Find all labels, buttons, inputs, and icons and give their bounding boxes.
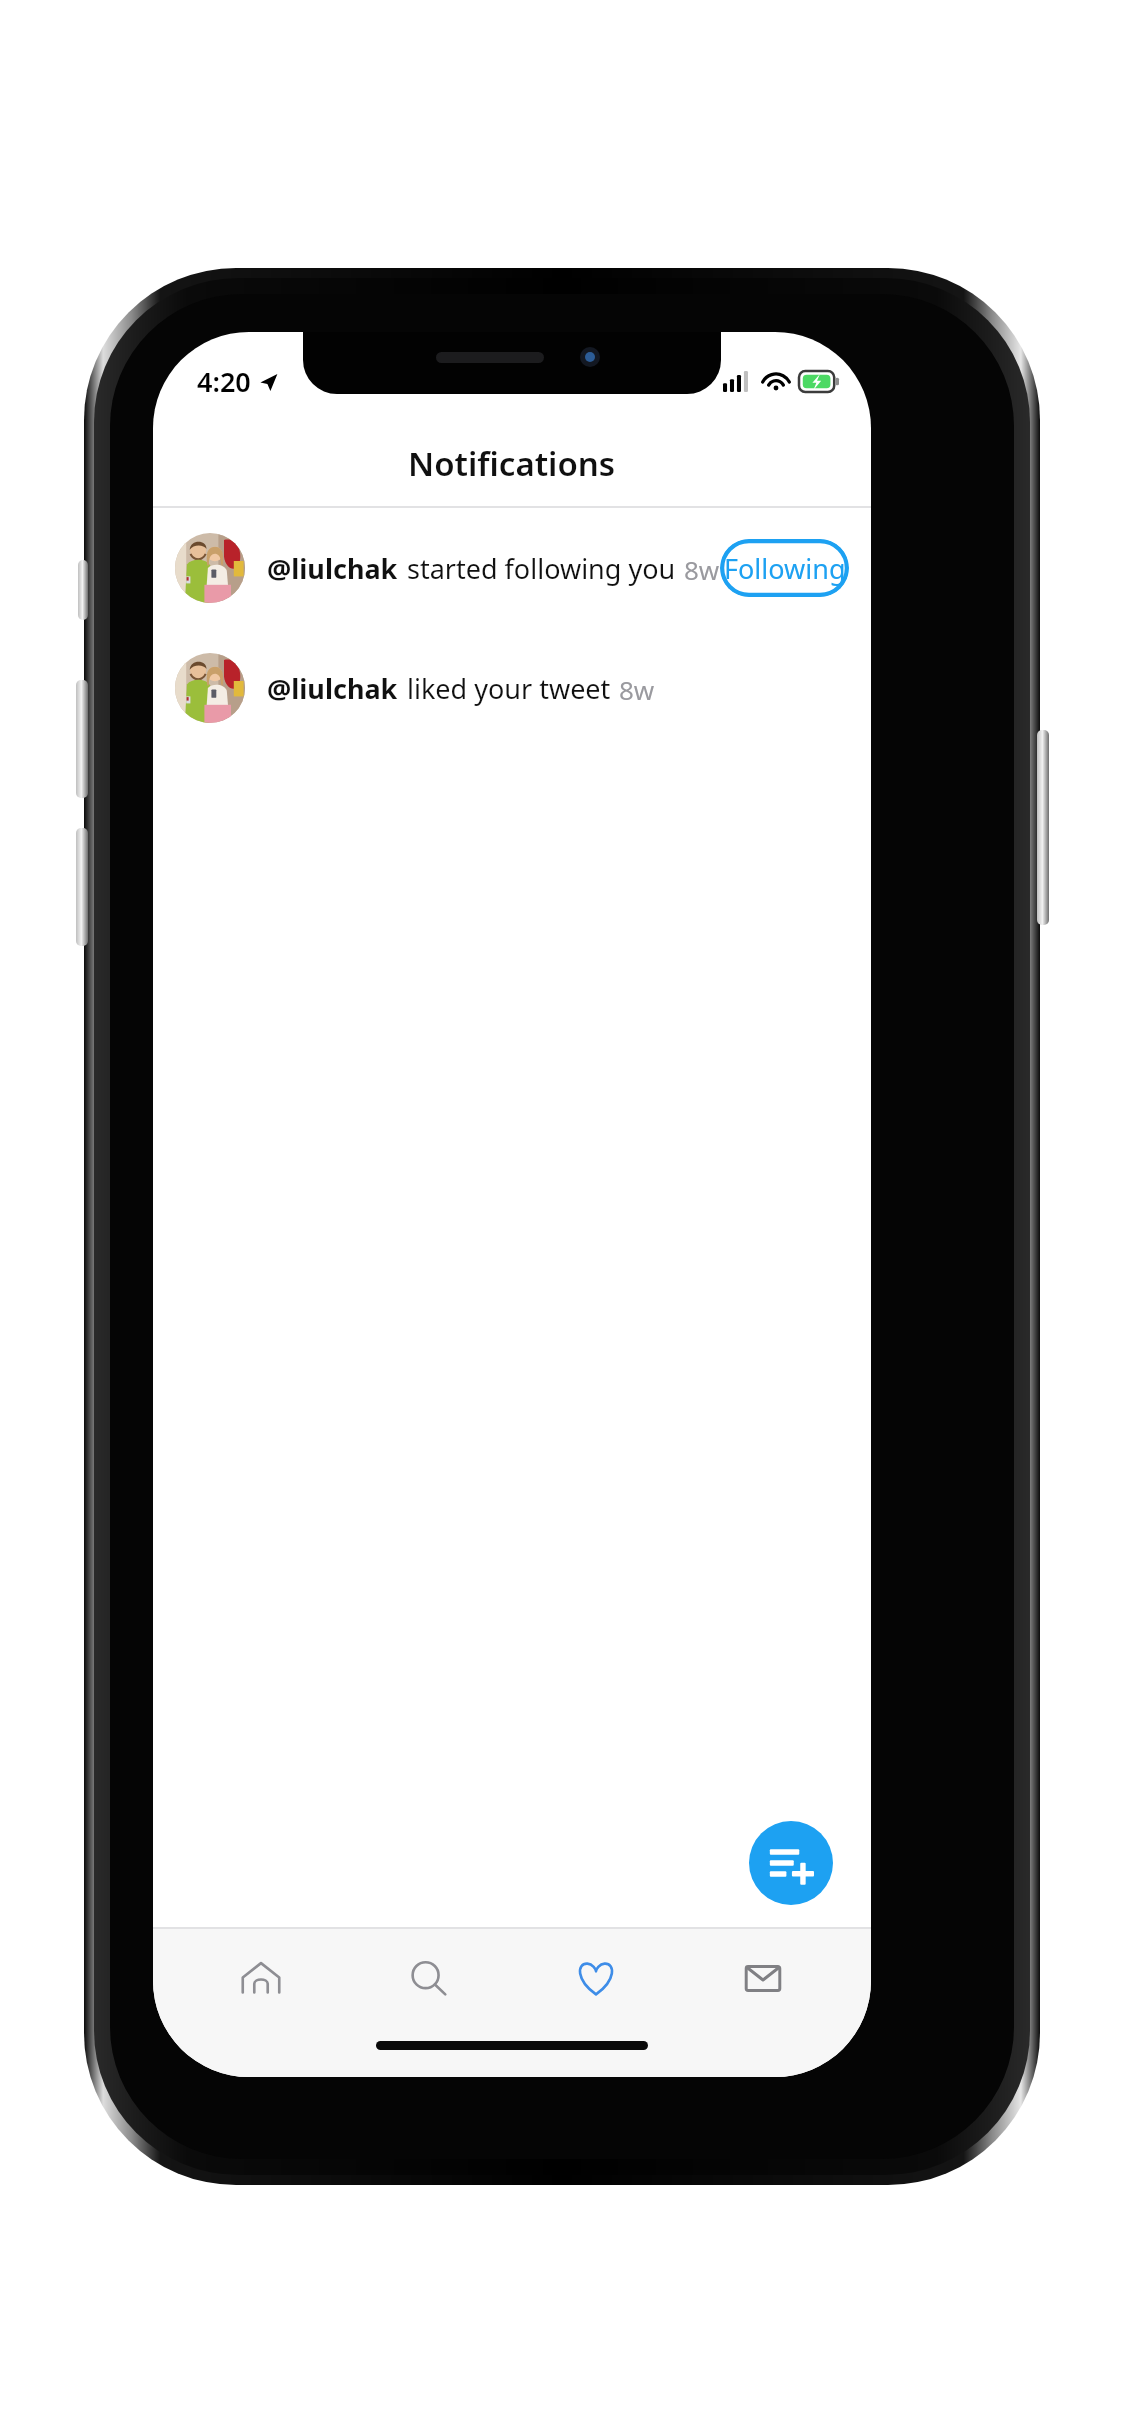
staticText: Following — [724, 550, 846, 587]
button[interactable]: Compose new Tweet — [749, 1821, 833, 1905]
staticText: 4:20 — [197, 363, 251, 400]
staticText: @liulchak — [267, 670, 398, 707]
button[interactable]: Following — [720, 539, 849, 597]
staticText: 8w — [684, 552, 720, 587]
button[interactable]: Messages — [703, 1929, 823, 2029]
button[interactable]: @liulchak — [153, 628, 871, 748]
button[interactable]: @liulchak — [153, 508, 871, 628]
staticText: @liulchak — [267, 550, 398, 587]
staticText: liked your tweet — [407, 670, 611, 707]
button[interactable]: Home — [201, 1929, 321, 2029]
staticText: 8w — [619, 672, 655, 707]
button[interactable]: Search — [368, 1929, 488, 2029]
button[interactable]: Notifications — [536, 1929, 656, 2029]
staticText: Notifications — [408, 441, 616, 486]
staticText: started following you — [407, 550, 676, 587]
